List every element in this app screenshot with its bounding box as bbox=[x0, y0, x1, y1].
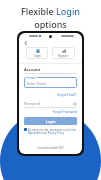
staticText: Enter Email bbox=[27, 81, 46, 86]
staticText: Email bbox=[28, 76, 36, 80]
button[interactable]: Login bbox=[26, 47, 48, 59]
staticText: Account bbox=[24, 67, 41, 72]
button[interactable]: Forgot Password bbox=[53, 110, 77, 114]
staticText: options bbox=[34, 18, 67, 30]
staticText: Connected with XYZ bbox=[19, 146, 82, 150]
button[interactable]: Forgot Email? bbox=[57, 93, 77, 97]
button[interactable]: Back bbox=[23, 40, 29, 46]
button[interactable]: Enter Email bbox=[24, 77, 77, 88]
button[interactable]: By using our site, you agree to our User… bbox=[24, 128, 77, 134]
staticText: Register bbox=[58, 54, 69, 58]
staticText: Login bbox=[34, 54, 41, 58]
button[interactable]: Login bbox=[24, 117, 77, 125]
staticText: By using our site, you agree to our User… bbox=[28, 128, 77, 134]
other: Show password bbox=[73, 102, 77, 106]
staticText: Flexible Login bbox=[21, 5, 80, 17]
staticText: Login bbox=[46, 119, 56, 124]
staticText: Password bbox=[24, 101, 40, 106]
button[interactable]: Password bbox=[24, 100, 77, 107]
button[interactable]: Register bbox=[52, 47, 75, 59]
